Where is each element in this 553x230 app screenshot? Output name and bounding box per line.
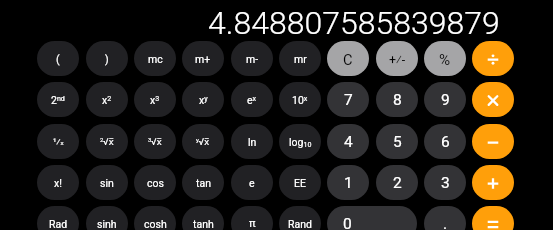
button[interactable]: log10 [279,124,321,159]
button[interactable]: EE [279,165,321,200]
button[interactable]: Rand [279,206,321,230]
button[interactable]: 8 [376,82,418,117]
staticText: 3 [441,174,450,192]
button[interactable]: tanh [182,206,224,230]
button[interactable]: root y of x [182,124,224,159]
button[interactable]: 3 [424,165,466,200]
staticText: EE [294,177,306,189]
button[interactable]: x3 [134,82,176,117]
button[interactable]: cos [134,165,176,200]
staticText: 8 [393,91,402,109]
staticText: 7 [344,91,353,109]
staticText: 2 [393,174,402,192]
staticText: mc [148,53,163,65]
staticText: ln [248,136,257,148]
button[interactable]: m- [231,41,273,76]
button[interactable]: ¹⁄x [37,124,79,159]
staticText: 1 [344,174,353,192]
button[interactable]: 2nd [37,82,79,117]
button[interactable]: ln [231,124,273,159]
button[interactable]: xy [182,82,224,117]
button[interactable]: ) [86,41,128,76]
button[interactable]: 7 [327,82,369,117]
staticText: x3 [150,94,160,106]
staticText: log10 [289,136,312,148]
staticText: ¹⁄x [53,136,64,147]
button[interactable]: cosh [134,206,176,230]
staticText: tan [196,177,211,189]
staticText: ( [56,53,60,65]
button[interactable]: 9 [424,82,466,117]
button[interactable]: Multiply [472,82,514,117]
staticText: tanh [193,218,214,230]
staticText: 5 [393,133,402,151]
button[interactable]: root 3 of x [134,124,176,159]
button[interactable]: tan [182,165,224,200]
button[interactable]: π [231,206,273,230]
button[interactable]: 0 [327,206,417,230]
button[interactable]: 4 [327,124,369,159]
staticText: % [439,51,451,69]
button[interactable]: x2 [86,82,128,117]
button[interactable]: sinh [86,206,128,230]
staticText: 6 [441,133,450,151]
button[interactable]: mc [134,41,176,76]
staticText: sinh [97,218,117,230]
staticText: ex [247,94,257,106]
staticText: x2 [102,94,112,106]
staticText: π [249,217,256,230]
button[interactable]: 10x [279,82,321,117]
button[interactable]: x! [37,165,79,200]
button[interactable]: ex [231,82,273,117]
staticText: ) [105,53,109,65]
button[interactable]: Equals [472,206,514,230]
staticText: 3√x̅ [148,135,162,148]
staticText: xy [199,94,208,106]
staticText: 9 [441,91,450,109]
button[interactable]: +⁄- [376,41,418,76]
button[interactable]: Subtract [472,124,514,159]
staticText: e [249,177,255,189]
staticText: 2√x̅ [100,135,114,148]
staticText: Rand [288,218,312,230]
staticText: mr [294,53,307,65]
button[interactable]: e [231,165,273,200]
button[interactable]: Rad [37,206,79,230]
button[interactable]: sin [86,165,128,200]
staticText: sin [100,177,114,189]
button[interactable]: Divide [472,41,514,76]
button[interactable]: % [424,41,466,76]
staticText: 4.848807585839879 [208,4,500,42]
button[interactable]: ( [37,41,79,76]
button[interactable]: 6 [424,124,466,159]
staticText: cosh [144,218,167,230]
button[interactable]: root 2 of x [86,124,128,159]
button[interactable]: C [327,41,369,76]
staticText: cos [147,177,164,189]
button[interactable]: . [424,206,466,230]
button[interactable]: 1 [327,165,369,200]
staticText: x! [54,177,62,189]
button[interactable]: 5 [376,124,418,159]
button[interactable]: Add [472,165,514,200]
staticText: m- [246,53,259,65]
staticText: 4 [344,133,353,151]
staticText: m+ [195,53,211,65]
staticText: +⁄- [389,52,406,67]
staticText: y√x̅ [196,135,210,148]
staticText: 10x [292,94,308,106]
button[interactable]: mr [279,41,321,76]
button[interactable]: m+ [182,41,224,76]
staticText: C [343,51,353,68]
button[interactable]: 2 [376,165,418,200]
staticText: 0 [343,215,352,230]
staticText: Rad [49,218,68,230]
staticText: 2nd [51,94,65,106]
staticText: . [443,215,448,230]
